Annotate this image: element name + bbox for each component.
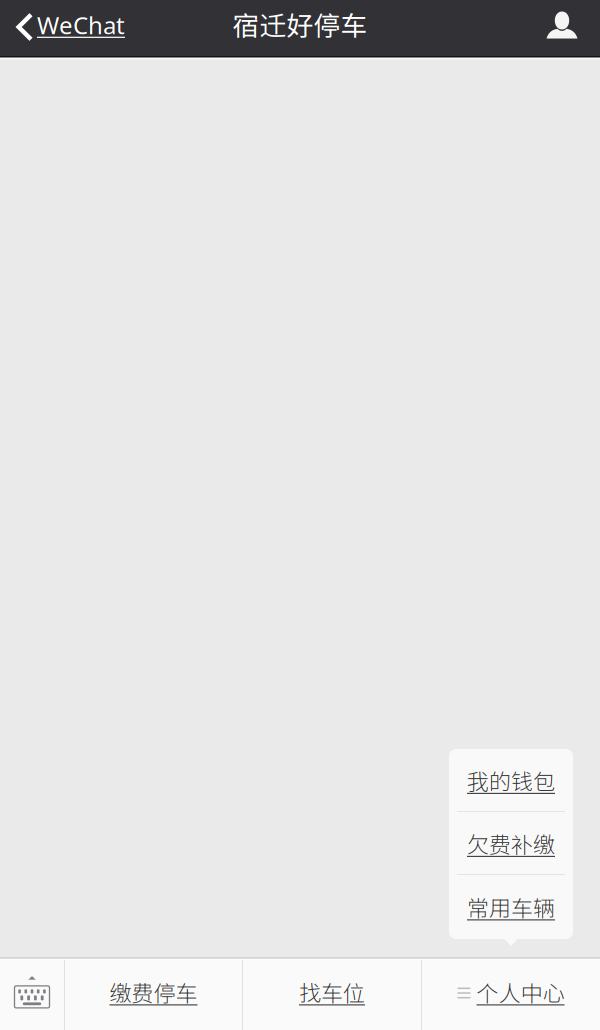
button[interactable]: 我的钱包 [449,749,573,812]
button[interactable]: 找车位 [243,960,421,1030]
staticText: 我的钱包 [467,765,555,796]
staticText: 欠费补缴 [467,828,555,859]
staticText: 宿迁好停车 [232,5,367,43]
staticText: 常用车辆 [467,891,555,923]
staticText: WeChat [37,9,125,41]
button[interactable]: 缴费停车 [65,960,242,1030]
staticText: 个人中心 [476,976,564,1008]
staticText: 缴费停车 [109,976,197,1008]
button[interactable]: 个人中心 [422,960,600,1030]
button[interactable]: Keyboard [0,960,64,1030]
button[interactable]: 常用车辆 [449,875,573,939]
staticText: 找车位 [299,976,365,1008]
button[interactable]: Profile [528,0,600,56]
button[interactable]: WeChat [0,0,135,56]
button[interactable]: 欠费补缴 [449,812,573,875]
